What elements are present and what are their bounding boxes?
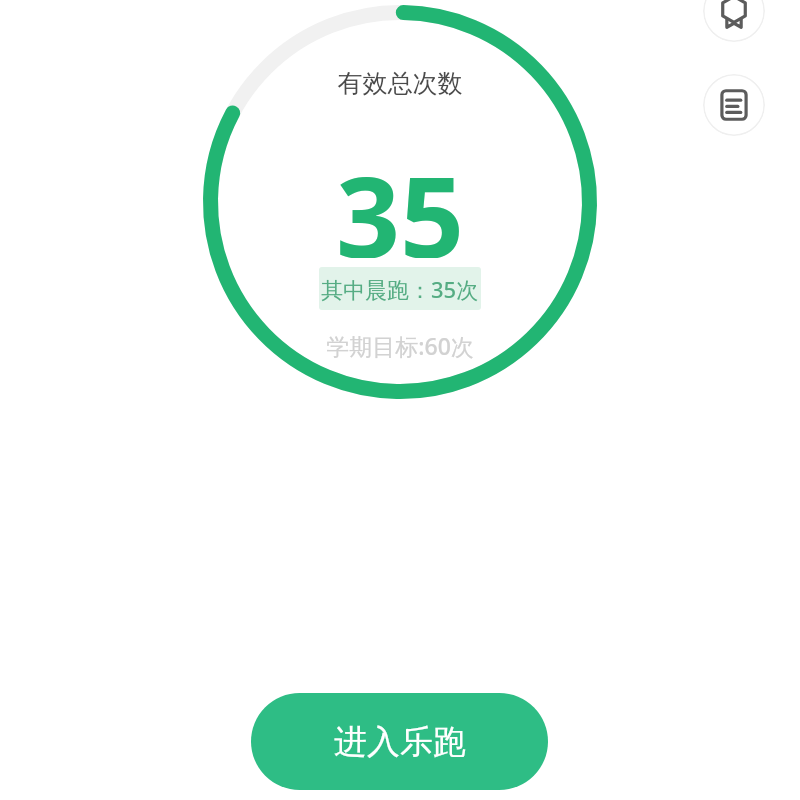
staticText: 35 [300, 138, 500, 258]
button[interactable]: Badges [703, 0, 765, 42]
staticText: 有效总次数 [300, 68, 500, 102]
staticText: 学期目标:60次 [300, 330, 500, 362]
button[interactable]: 进入乐跑 [251, 693, 548, 790]
staticText: 进入乐跑 [334, 721, 466, 763]
button[interactable]: Records [703, 74, 765, 136]
button[interactable]: 其中晨跑：35次 [319, 267, 481, 310]
staticText: 其中晨跑：35次 [321, 274, 479, 304]
